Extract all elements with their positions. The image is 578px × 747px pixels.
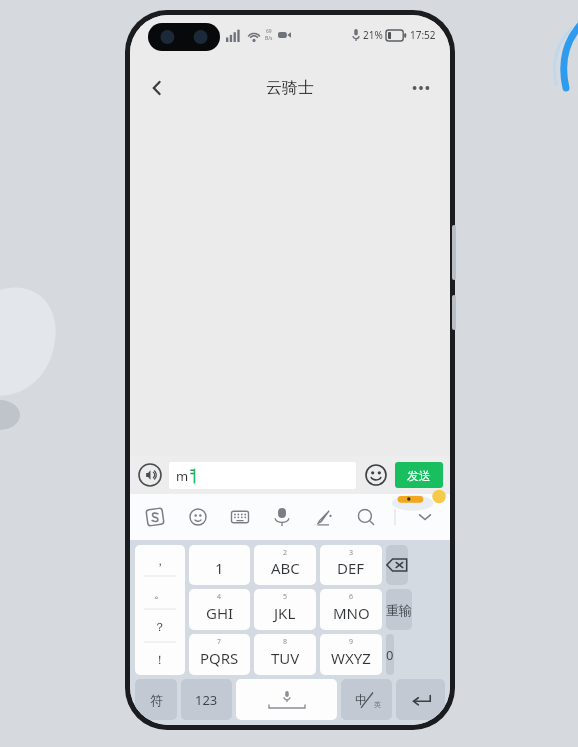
button[interactable]: Keyboard layout <box>227 504 253 530</box>
button[interactable]: 8 <box>254 634 316 675</box>
staticText: TUV <box>271 648 300 668</box>
staticText: ， <box>154 553 166 568</box>
button[interactable]: Handwriting <box>311 504 337 530</box>
button[interactable]: m <box>169 462 356 489</box>
staticText: 云骑士 <box>266 78 314 98</box>
staticText: 21% <box>363 28 383 42</box>
staticText: 9 <box>349 637 354 647</box>
staticText: 英 <box>374 700 381 709</box>
staticText: 69 <box>266 28 272 35</box>
staticText: 5 <box>283 592 288 602</box>
staticText: 4 <box>217 592 222 602</box>
button[interactable]: 6 <box>320 589 382 630</box>
button[interactable]: 重输 <box>386 589 412 630</box>
staticText: 符 <box>150 692 163 708</box>
staticText: GHI <box>206 603 234 623</box>
staticText: 重输 <box>386 602 412 618</box>
staticText: 发送 <box>407 468 431 483</box>
button[interactable]: 9 <box>320 634 382 675</box>
button[interactable]: ， <box>135 545 185 675</box>
staticText: JKL <box>274 603 296 623</box>
button[interactable]: Enter <box>396 679 445 720</box>
staticText: 2 <box>283 548 288 558</box>
button[interactable]: 2 <box>254 545 316 585</box>
button[interactable]: Backspace <box>386 545 408 585</box>
button[interactable]: Chinese English toggle <box>341 679 392 720</box>
button[interactable]: 3 <box>320 545 382 585</box>
staticText: 6 <box>349 592 354 602</box>
button[interactable]: Sogou input <box>142 504 168 530</box>
button[interactable]: More options <box>402 69 440 107</box>
staticText: 7 <box>217 637 222 647</box>
button[interactable]: 符 <box>135 679 177 720</box>
staticText: 1 <box>215 558 224 578</box>
staticText: DEF <box>337 558 365 578</box>
button[interactable]: Search <box>353 504 379 530</box>
staticText: 8 <box>283 637 288 647</box>
button[interactable]: Hide keyboard <box>412 504 438 530</box>
staticText: PQRS <box>200 648 239 668</box>
staticText: 17:52 <box>410 28 436 42</box>
button[interactable]: 0 <box>386 634 394 675</box>
button[interactable]: 4 <box>189 589 250 630</box>
staticText: ABC <box>271 558 300 578</box>
button[interactable]: 1 <box>189 545 250 585</box>
staticText: 123 <box>195 691 218 709</box>
staticText: 中 <box>355 692 367 707</box>
staticText: ！ <box>154 652 166 667</box>
button[interactable]: Voice input <box>137 462 163 488</box>
button[interactable]: 7 <box>189 634 250 675</box>
staticText: 。 <box>154 586 166 601</box>
staticText: m <box>176 467 189 485</box>
staticText: 0 <box>386 646 394 664</box>
button[interactable]: 发送 <box>395 462 443 488</box>
button[interactable]: 123 <box>181 679 232 720</box>
staticText: MNO <box>333 603 370 623</box>
button[interactable]: Back <box>138 69 176 107</box>
staticText: 3 <box>349 548 354 558</box>
button[interactable]: Emoji <box>363 462 389 488</box>
staticText: ？ <box>154 619 166 634</box>
staticText: B/s <box>265 35 273 42</box>
staticText: WXYZ <box>331 648 371 668</box>
button[interactable]: Emoticons <box>185 504 211 530</box>
button[interactable]: 5 <box>254 589 316 630</box>
button[interactable]: Voice <box>269 504 295 530</box>
button[interactable]: Space / voice <box>236 679 337 720</box>
